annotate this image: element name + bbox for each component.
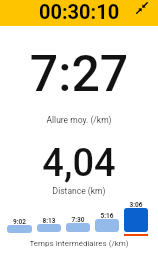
button[interactable]: 5:16 [95, 196, 119, 240]
staticText: 5:16 [95, 212, 119, 220]
staticText: 4,04 [0, 141, 158, 186]
staticText: 3:06 [124, 201, 148, 209]
staticText: Allure moy. (/km) [0, 115, 158, 125]
button[interactable]: 3:06 [124, 196, 148, 240]
staticText: 7:30 [66, 216, 90, 224]
staticText: Temps intermédiaires (/km) [0, 239, 158, 248]
staticText: 9:02 [7, 218, 32, 226]
button[interactable]: 9:02 [7, 196, 32, 240]
staticText: 7:27 [0, 45, 158, 104]
staticText: 8:13 [37, 217, 61, 225]
staticText: 00:30:10 [39, 0, 120, 23]
button[interactable]: 7:30 [66, 196, 90, 240]
staticText: Distance (km) [0, 186, 158, 196]
button[interactable]: 8:13 [37, 196, 61, 240]
button[interactable]: Exit full screen [136, 2, 148, 14]
